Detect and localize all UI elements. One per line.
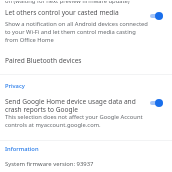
button[interactable]: Toggle send Google Home device usage dat… [148,96,166,109]
staticText: Show a notification on all Android devic… [5,20,149,44]
staticText: This selection does not affect your Goog… [5,113,150,129]
button[interactable]: Toggle let others control your casted me… [148,9,166,22]
button[interactable]: Paired Bluetooth devices [0,50,172,74]
staticText: Privacy [5,82,25,90]
button[interactable]: Send Google Home device usage data and c… [0,78,172,140]
staticText: Paired Bluetooth devices [5,56,82,65]
staticText: Send Google Home device usage data and c… [5,97,147,114]
staticText: Let others control your casted media [5,8,119,17]
staticText: Information [5,145,39,153]
staticText: System firmware version: 93937 [5,160,94,168]
button[interactable]: Let others control your casted media [0,5,172,51]
staticText: on (waiting for next preview firmware up… [5,0,130,5]
